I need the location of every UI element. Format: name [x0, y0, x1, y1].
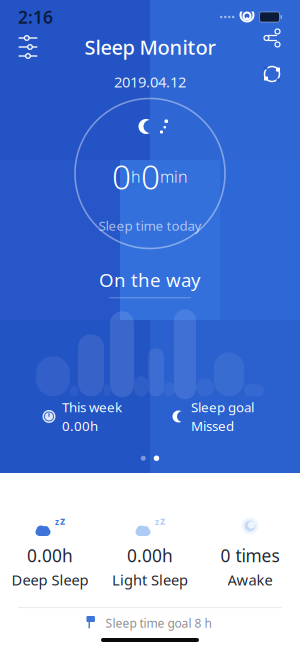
staticText: z — [160, 513, 165, 528]
staticText: 0.00h — [27, 544, 73, 567]
staticText: z — [55, 517, 59, 527]
staticText: 2019.04.12 — [114, 72, 186, 91]
button[interactable]: z — [0, 515, 100, 589]
staticText: Missed — [191, 417, 234, 435]
button[interactable]: Sleep time goal 8 h — [0, 608, 300, 638]
staticText: This week — [62, 398, 122, 416]
staticText: Awake — [227, 570, 272, 589]
button[interactable]: Share — [252, 23, 292, 53]
staticText: min — [160, 166, 188, 187]
staticText: Deep Sleep — [11, 570, 88, 589]
button[interactable]: Refresh — [252, 59, 292, 89]
staticText: On the way — [99, 267, 201, 292]
staticText: 0.00h — [127, 544, 173, 567]
staticText: z — [60, 513, 65, 528]
button[interactable]: 0 times — [200, 515, 300, 589]
staticText: 0 — [141, 154, 160, 199]
staticText: Sleep time goal 8 h — [105, 615, 211, 631]
staticText: 0.00h — [62, 417, 98, 435]
staticText: Sleep goal — [191, 398, 254, 416]
button[interactable]: z — [100, 515, 200, 589]
staticText: Sleep Monitor — [84, 34, 215, 60]
staticText: Light Sleep — [112, 570, 188, 589]
button[interactable]: Settings — [8, 30, 48, 64]
staticText: 0 times — [220, 544, 279, 567]
staticText: z — [155, 517, 159, 527]
staticText: 0 — [112, 154, 131, 199]
staticText: h — [131, 166, 141, 187]
staticText: Sleep time today — [98, 217, 201, 234]
staticText: 2:16 — [18, 5, 53, 28]
